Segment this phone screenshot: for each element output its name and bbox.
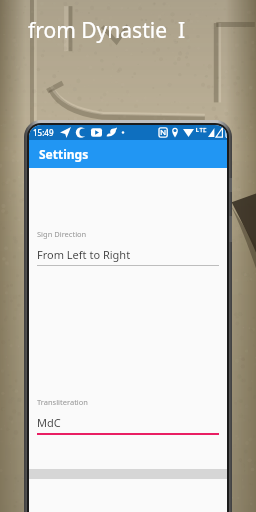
staticText: from Dynastie I (28, 16, 186, 45)
staticText: Transliteration (37, 397, 88, 407)
button[interactable]: Settings (29, 140, 227, 168)
staticText: 15:49 (33, 127, 54, 138)
button[interactable]: Sign Direction (29, 229, 227, 266)
staticText: Settings (39, 146, 89, 162)
button[interactable]: Transliteration (29, 397, 227, 435)
staticText: Sign Direction (37, 229, 87, 239)
staticText: From Left to Right (37, 247, 131, 262)
staticText: MdC (37, 415, 61, 430)
